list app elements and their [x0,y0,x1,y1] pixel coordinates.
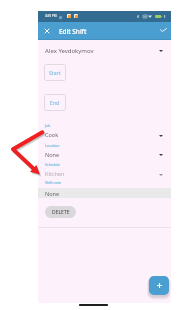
button[interactable] [38,121,171,140]
staticText: Cook [45,131,59,138]
staticText: Start [49,69,61,76]
button[interactable] [38,179,171,208]
button[interactable] [38,41,171,58]
staticText: End [50,99,60,106]
staticText: Kitchen [45,170,65,177]
button[interactable]: End [44,94,66,111]
button[interactable]: Start [44,64,66,81]
staticText: 4:39 PM [45,14,57,18]
staticText: Location [45,143,60,148]
staticText: Edit Shift [59,27,87,36]
button[interactable] [38,160,171,179]
staticText: Shift note [45,180,62,185]
staticText: Job [45,123,51,128]
staticText: Schedule [45,162,61,167]
button[interactable]: DELETE [45,206,76,218]
staticText: None [45,190,60,197]
button[interactable]: Save [157,23,170,36]
button[interactable] [38,141,171,160]
button[interactable]: Close [41,25,53,37]
staticText: None [45,151,60,158]
staticText: DELETE [52,209,70,216]
button[interactable]: Add [149,276,169,295]
staticText: Alex Yevdokymov [45,47,94,55]
